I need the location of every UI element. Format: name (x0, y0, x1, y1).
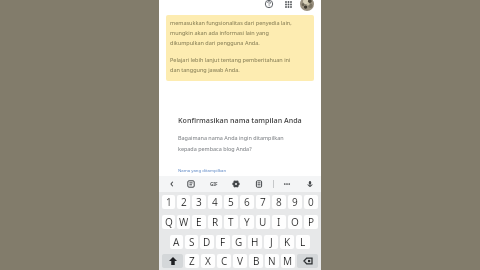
staticText: M (283, 254, 293, 268)
button[interactable]: I (272, 215, 286, 229)
staticText: A (173, 235, 180, 249)
staticText: R (212, 215, 219, 229)
staticText: 0 (308, 195, 314, 209)
button[interactable]: Settings (230, 176, 242, 192)
staticText: V (237, 254, 243, 268)
staticText: S (189, 235, 195, 249)
button[interactable]: J (264, 235, 278, 249)
staticText: Y (244, 215, 250, 229)
staticText: kepada pembaca blog Anda? (178, 145, 252, 152)
button[interactable]: Help (262, 0, 276, 11)
staticText: B (253, 254, 260, 268)
button[interactable]: 7 (256, 195, 270, 209)
staticText: Bagaimana nama Anda ingin ditampilkan (178, 134, 284, 141)
staticText: T (228, 215, 234, 229)
button[interactable]: R (208, 215, 222, 229)
staticText: 7 (260, 195, 266, 209)
staticText: memasukkan fungsionalitas dari penyedia … (170, 19, 292, 26)
button[interactable]: O (288, 215, 302, 229)
staticText: 3 (196, 195, 202, 209)
staticText: GIF (210, 181, 218, 187)
staticText: mungkin akan ada informasi lain yang (170, 29, 269, 36)
staticText: Pelajari lebih lanjut tentang pemberitah… (170, 56, 291, 63)
staticText: E (196, 215, 202, 229)
button[interactable]: 8 (272, 195, 286, 209)
button[interactable]: Google apps (281, 0, 295, 11)
staticText: X (205, 254, 211, 268)
button[interactable]: Clipboard (253, 176, 265, 192)
button[interactable]: T (224, 215, 238, 229)
staticText: C (221, 254, 228, 268)
button[interactable]: P (304, 215, 318, 229)
button[interactable]: GIF (208, 176, 220, 192)
button[interactable]: L (296, 235, 310, 249)
staticText: D (203, 235, 211, 249)
button[interactable]: 5 (224, 195, 238, 209)
staticText: Konfirmasikan nama tampilan Anda (178, 115, 302, 125)
button[interactable]: U (256, 215, 270, 229)
button[interactable]: G (232, 235, 246, 249)
button[interactable]: Y (240, 215, 254, 229)
staticText: 5 (228, 195, 234, 209)
staticText: U (259, 215, 267, 229)
staticText: J (270, 235, 273, 249)
staticText: G (235, 235, 243, 249)
staticText: P (308, 215, 315, 229)
staticText: L (300, 235, 306, 249)
button[interactable]: S (185, 235, 198, 249)
button[interactable]: Z (185, 254, 199, 268)
button[interactable]: N (265, 254, 279, 268)
staticText: 6 (244, 195, 250, 209)
staticText: dikumpulkan dari pengguna Anda. (170, 39, 260, 46)
button[interactable]: 9 (288, 195, 302, 209)
button[interactable]: B (249, 254, 263, 268)
button[interactable]: Backspace (297, 254, 318, 268)
button[interactable]: W (177, 215, 190, 229)
staticText: N (268, 254, 276, 268)
button[interactable]: E (192, 215, 206, 229)
button[interactable]: D (200, 235, 214, 249)
button[interactable]: F (216, 235, 230, 249)
staticText: O (291, 215, 299, 229)
button[interactable]: More options (281, 176, 293, 192)
staticText: 2 (181, 195, 187, 209)
staticText: Q (165, 215, 173, 229)
button[interactable]: H (248, 235, 262, 249)
staticText: dan tanggung jawab Anda. (170, 66, 240, 73)
button[interactable]: 3 (192, 195, 206, 209)
button[interactable]: Back (166, 176, 178, 192)
button[interactable]: A (170, 235, 183, 249)
staticText: I (277, 215, 281, 229)
button[interactable]: Voice input (304, 176, 316, 192)
button[interactable]: Nama yang ditampilkan (178, 167, 227, 173)
button[interactable]: 4 (208, 195, 222, 209)
staticText: K (284, 235, 291, 249)
button[interactable]: Shift (162, 254, 183, 268)
button[interactable]: X (201, 254, 215, 268)
button[interactable]: Q (162, 215, 175, 229)
button[interactable]: 0 (304, 195, 318, 209)
staticText: 9 (292, 195, 298, 209)
button[interactable]: Stickers (185, 176, 197, 192)
staticText: 1 (166, 195, 172, 209)
staticText: W (179, 215, 189, 229)
button[interactable]: M (281, 254, 295, 268)
staticText: Nama yang ditampilkan (178, 167, 227, 173)
staticText: 8 (276, 195, 282, 209)
staticText: H (251, 235, 259, 249)
button[interactable]: 1 (162, 195, 175, 209)
button[interactable]: 6 (240, 195, 254, 209)
button[interactable]: V (233, 254, 247, 268)
staticText: 4 (212, 195, 218, 209)
button[interactable]: K (280, 235, 294, 249)
button[interactable]: 2 (177, 195, 190, 209)
button[interactable]: C (217, 254, 231, 268)
staticText: F (220, 235, 226, 249)
button[interactable]: Google Account (300, 0, 314, 11)
staticText: Z (189, 254, 195, 268)
